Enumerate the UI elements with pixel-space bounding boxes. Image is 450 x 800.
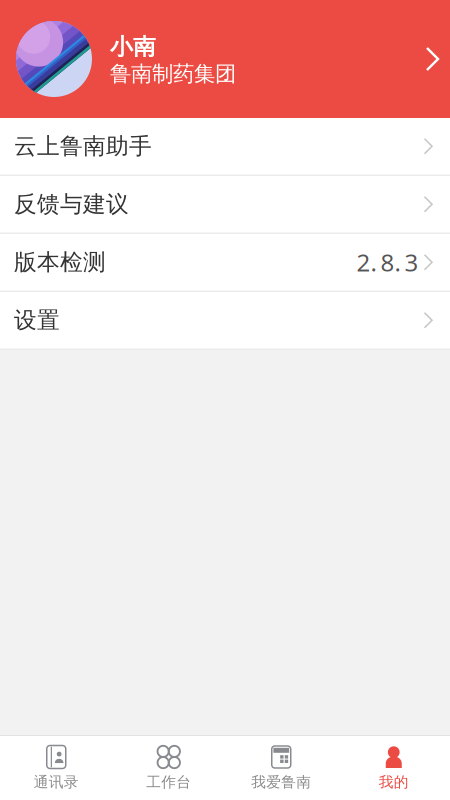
staticText: 设置 [14,306,60,334]
button[interactable]: 设置 [0,292,450,350]
button[interactable]: 我的 [337,736,450,800]
staticText: 我的 [379,773,409,791]
button[interactable]: 通讯录 [0,736,112,800]
button[interactable]: 小南 [0,0,450,118]
staticText: 通讯录 [34,773,79,791]
staticText: 小南 [110,33,156,61]
staticText: 云上鲁南助手 [14,132,152,160]
staticText: 鲁南制药集团 [110,61,236,87]
staticText: 反馈与建议 [14,190,129,218]
staticText: 版本检测 [14,248,106,276]
staticText: 工作台 [146,773,191,791]
button[interactable]: 工作台 [112,736,225,800]
button[interactable]: 反馈与建议 [0,176,450,234]
staticText: 我爱鲁南 [251,773,311,791]
staticText: 2. 8. 3 [356,246,418,278]
button[interactable]: 版本检测 [0,234,450,292]
button[interactable]: 我爱鲁南 [225,736,337,800]
button[interactable]: 云上鲁南助手 [0,118,450,176]
